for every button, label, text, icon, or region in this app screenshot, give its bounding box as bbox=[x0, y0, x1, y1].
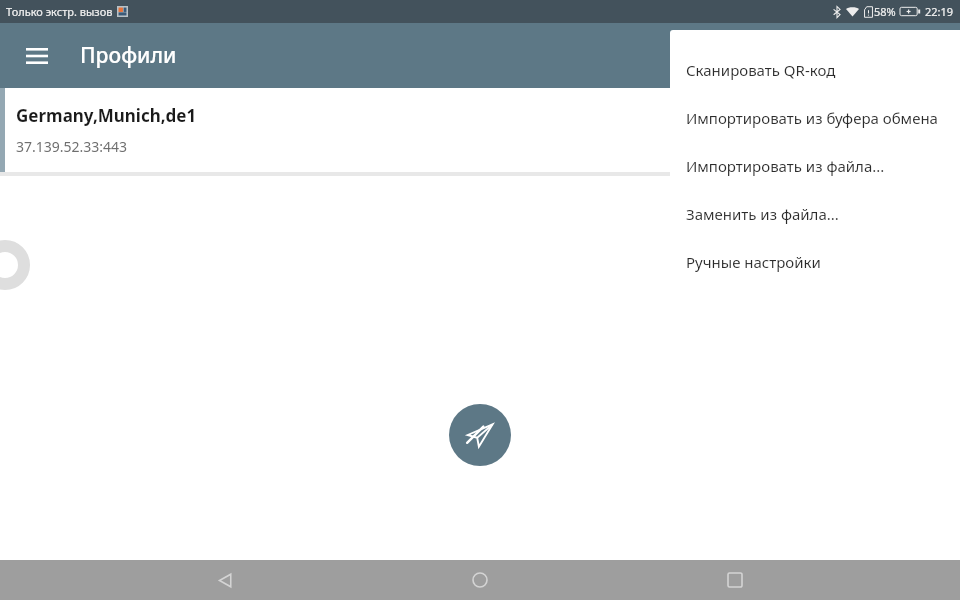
button[interactable]: Назад bbox=[195, 560, 255, 600]
button[interactable]: Импортировать из буфера обмена bbox=[670, 94, 960, 142]
staticText: Импортировать из буфера обмена bbox=[686, 108, 938, 128]
staticText: Импортировать из файла... bbox=[686, 156, 885, 176]
staticText: Сканировать QR-код bbox=[686, 60, 836, 80]
button[interactable]: Обзор bbox=[705, 560, 765, 600]
staticText: Заменить из файла... bbox=[686, 204, 839, 224]
staticText: 58% bbox=[874, 4, 896, 19]
staticText: 37.139.52.33:443 bbox=[16, 137, 128, 156]
button[interactable]: Заменить из файла... bbox=[670, 190, 960, 238]
button[interactable]: Главный экран bbox=[450, 560, 510, 600]
staticText: Только экстр. вызов bbox=[6, 4, 113, 19]
staticText: Профили bbox=[80, 41, 177, 70]
staticText: 22:19 bbox=[925, 4, 954, 19]
button[interactable]: Ручные настройки bbox=[670, 238, 960, 286]
button[interactable]: Открыть меню навигации bbox=[14, 33, 60, 79]
button[interactable]: Импортировать из файла... bbox=[670, 142, 960, 190]
staticText: Germany,Munich,de1 bbox=[16, 104, 197, 127]
button[interactable]: Подключиться bbox=[449, 404, 511, 466]
button[interactable]: Сканировать QR-код bbox=[670, 46, 960, 94]
staticText: Ручные настройки bbox=[686, 252, 821, 272]
button[interactable]: Germany,Munich,de1 bbox=[0, 88, 960, 172]
